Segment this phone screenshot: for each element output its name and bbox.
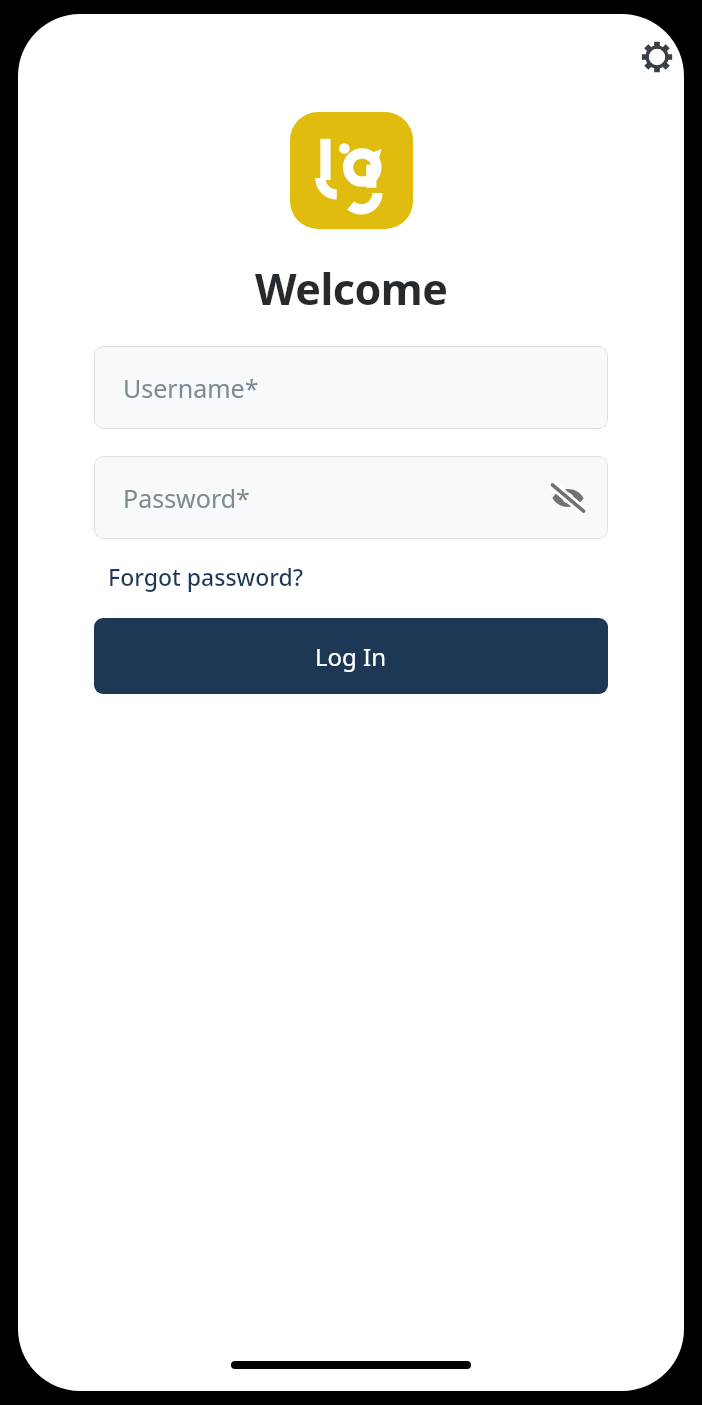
button[interactable]: Log In (94, 618, 608, 694)
button[interactable]: Show password (544, 474, 592, 522)
button[interactable]: Forgot password? (108, 557, 303, 596)
button[interactable]: Password* (94, 456, 608, 539)
staticText: Log In (315, 640, 387, 673)
button[interactable]: Username* (94, 346, 608, 429)
staticText: Password* (123, 481, 250, 515)
staticText: Forgot password? (108, 561, 303, 592)
staticText: Username* (123, 371, 259, 405)
button[interactable]: Settings (634, 34, 680, 80)
staticText: Welcome (255, 259, 448, 318)
